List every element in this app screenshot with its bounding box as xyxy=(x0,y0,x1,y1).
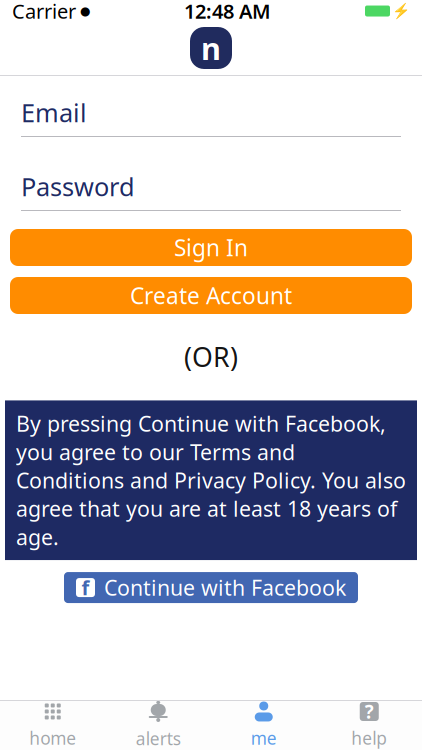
button[interactable]: me xyxy=(211,701,316,750)
button[interactable]: ? xyxy=(316,701,422,750)
staticText: (OR) xyxy=(184,339,238,374)
staticText: home xyxy=(29,726,76,749)
staticText: ● xyxy=(76,4,90,18)
staticText: ⚡ xyxy=(392,3,410,19)
staticText: Carrier xyxy=(12,0,76,24)
staticText: me xyxy=(251,726,277,749)
button[interactable]: f xyxy=(64,572,358,603)
button[interactable]: Sign In xyxy=(10,229,412,266)
staticText: Email xyxy=(21,96,87,129)
button[interactable]: alerts xyxy=(105,701,211,750)
button[interactable]: home xyxy=(0,701,105,750)
staticText: Create Account xyxy=(130,280,292,310)
staticText: alerts xyxy=(136,727,181,750)
staticText: Continue with Facebook xyxy=(104,573,346,602)
staticText: f xyxy=(81,574,89,601)
staticText: n xyxy=(201,28,221,68)
staticText: help xyxy=(351,726,387,749)
staticText: Password xyxy=(21,170,135,203)
staticText: Sign In xyxy=(174,232,248,262)
button[interactable]: Create Account xyxy=(10,277,412,314)
staticText: By pressing Continue with Facebook, you … xyxy=(16,409,406,551)
staticText: 12:48 AM xyxy=(184,0,271,24)
staticText: ? xyxy=(365,699,374,724)
